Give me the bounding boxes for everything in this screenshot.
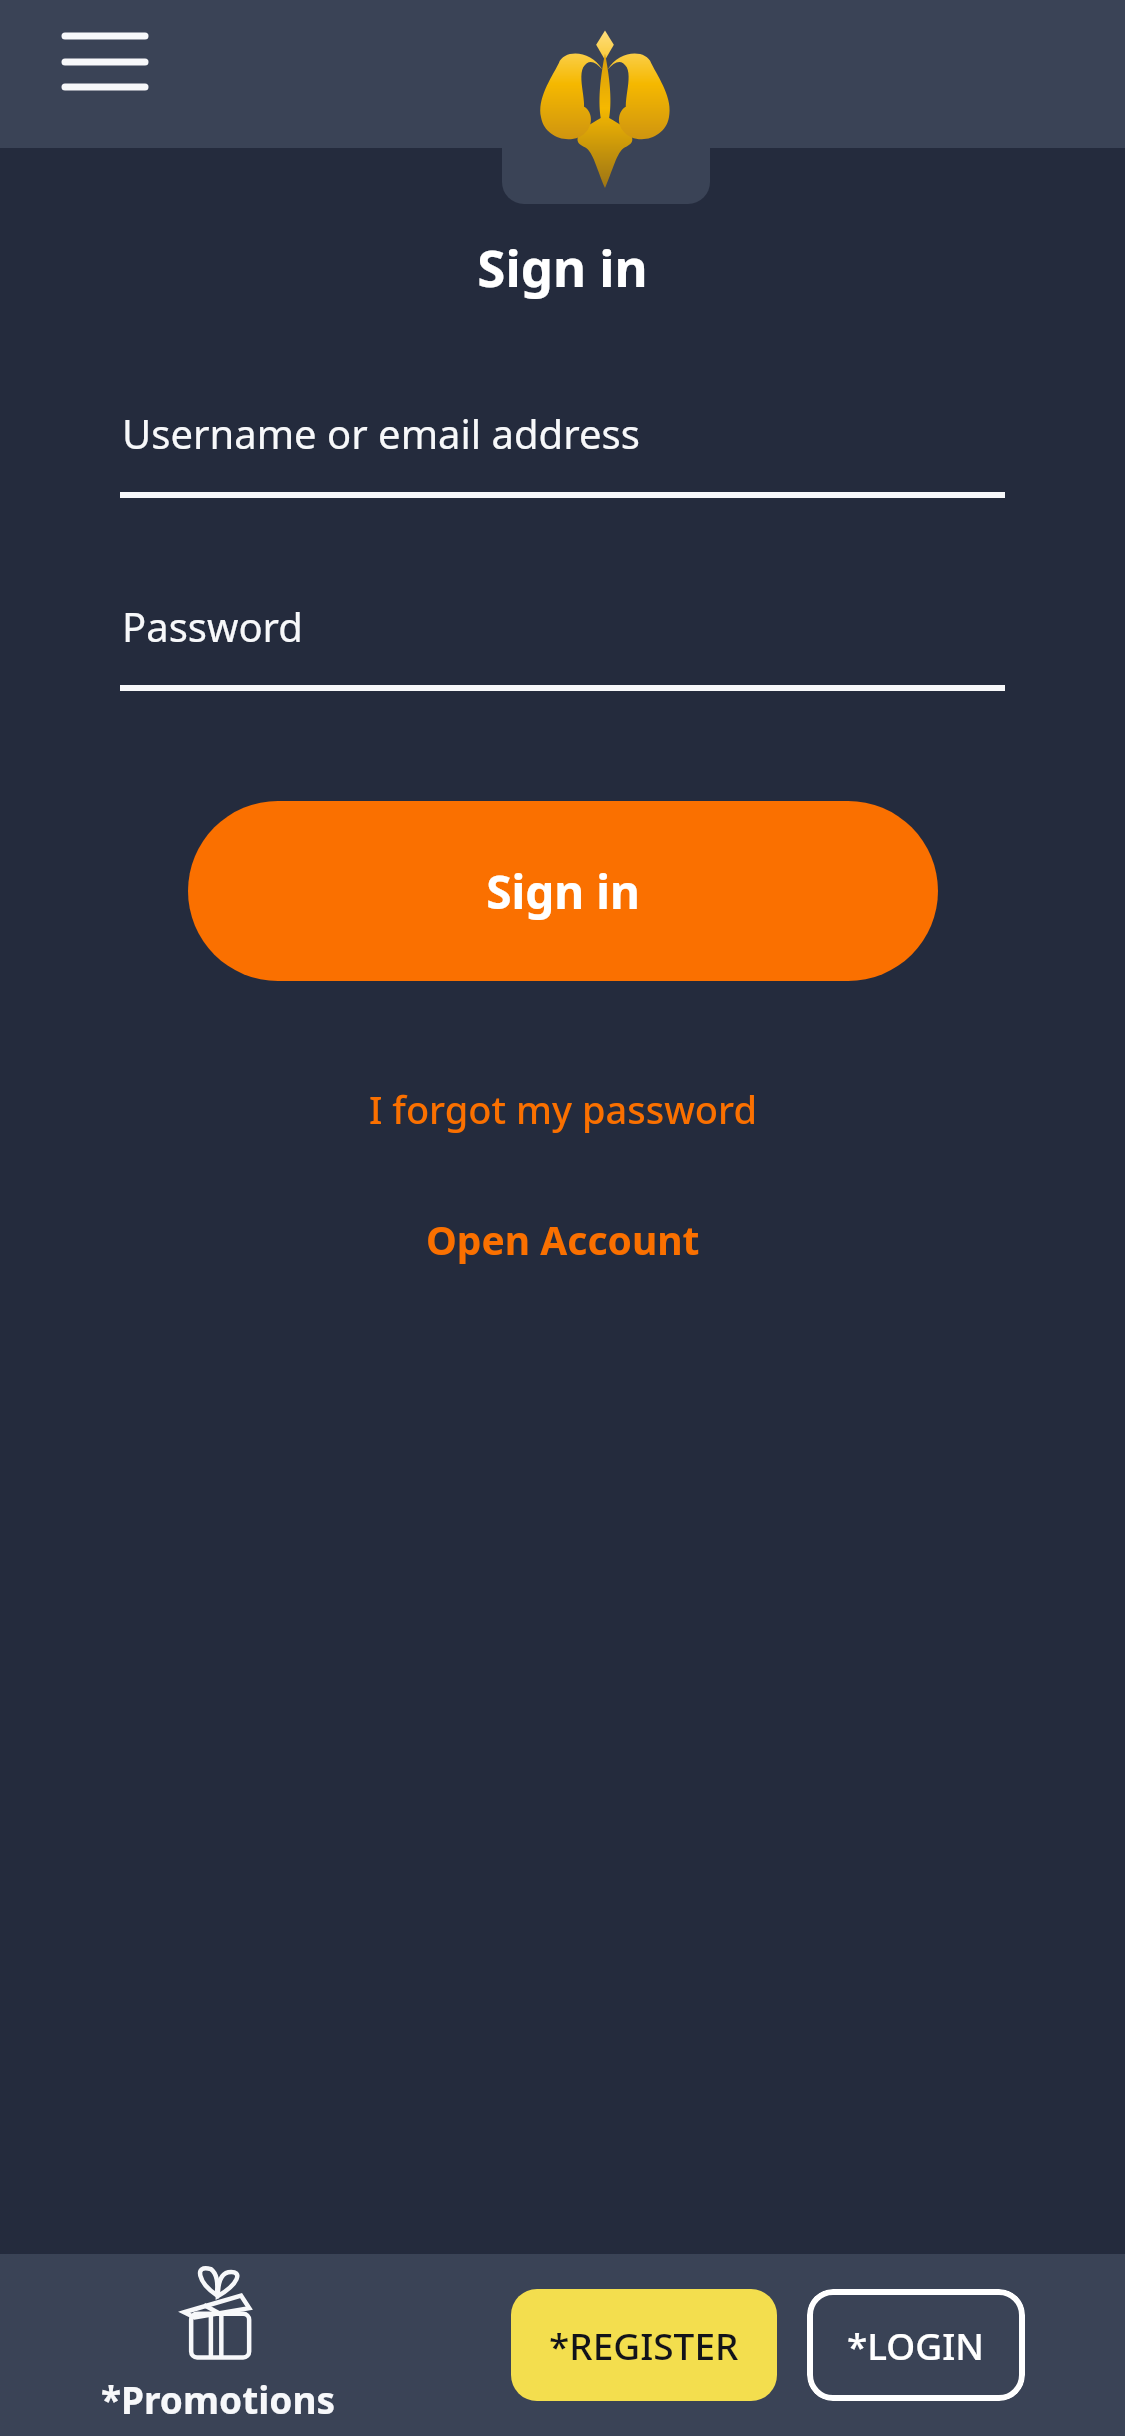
staticText: *REGISTER — [549, 2320, 739, 2370]
staticText: Password — [122, 599, 303, 653]
staticText: Open Account — [426, 1213, 700, 1266]
button[interactable]: Menu — [40, 19, 170, 129]
button[interactable]: Username or email address — [0, 406, 1125, 460]
button[interactable]: *LOGIN — [807, 2289, 1025, 2401]
button[interactable]: *REGISTER — [511, 2289, 777, 2401]
button[interactable]: Sign in — [188, 801, 938, 981]
staticText: *LOGIN — [847, 2320, 985, 2370]
button[interactable]: *Promotions — [95, 2262, 342, 2428]
button[interactable]: I forgot my password — [351, 1073, 775, 1145]
staticText: Sign in — [486, 860, 640, 923]
staticText: *Promotions — [101, 2374, 336, 2424]
staticText: Sign in — [0, 232, 1125, 301]
button[interactable]: Open Account — [408, 1203, 718, 1276]
staticText: Username or email address — [122, 406, 640, 460]
button[interactable]: Logo — [537, 28, 673, 188]
staticText: I forgot my password — [369, 1083, 757, 1135]
button[interactable]: Password — [0, 599, 1125, 653]
